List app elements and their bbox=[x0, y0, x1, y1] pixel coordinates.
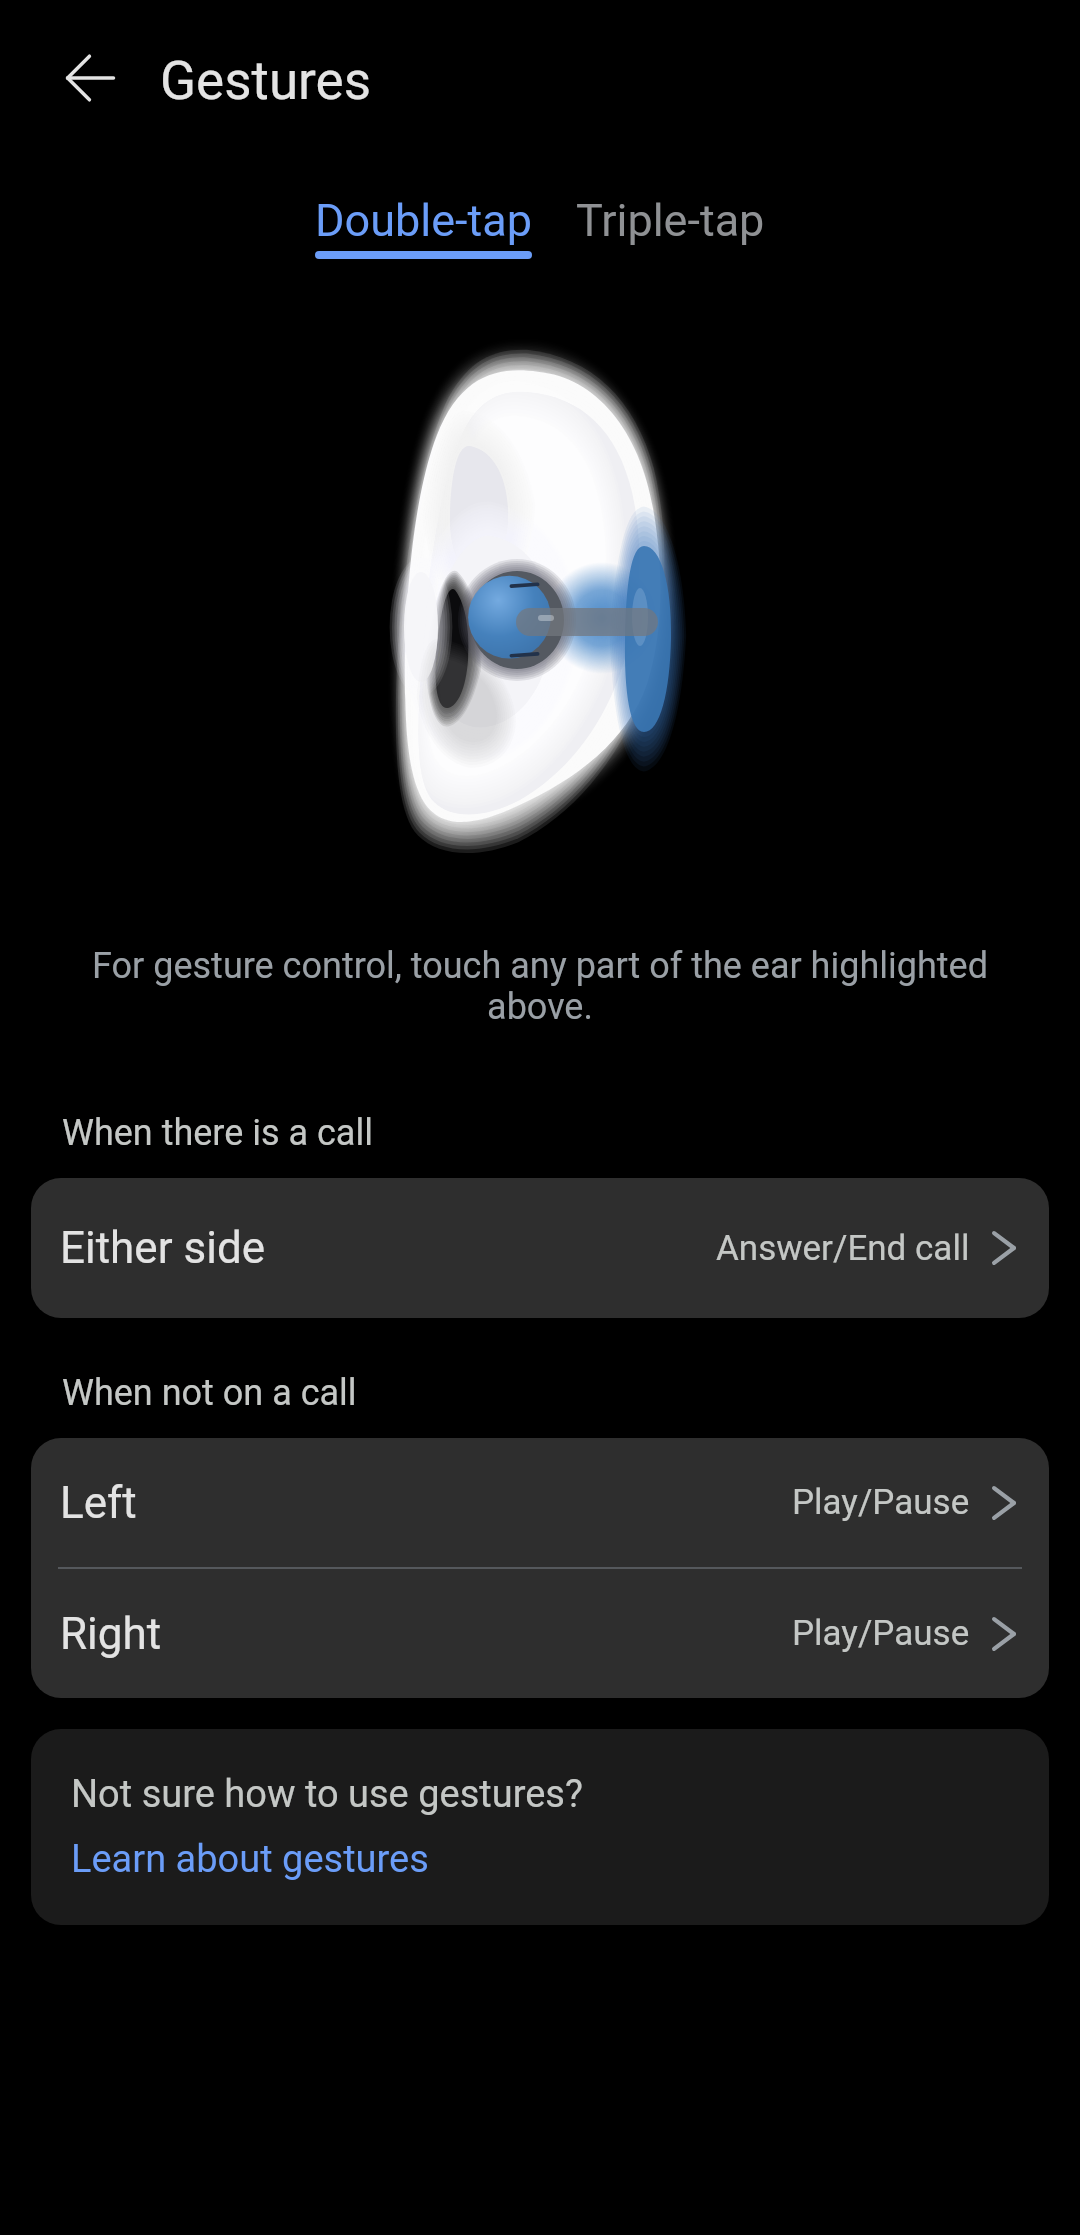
staticText: When not on a call bbox=[62, 1372, 357, 1414]
staticText: Not sure how to use gestures? bbox=[71, 1772, 583, 1817]
staticText: Right bbox=[60, 1608, 162, 1660]
staticText: Left bbox=[60, 1477, 137, 1529]
button[interactable]: Learn about gestures bbox=[71, 1837, 429, 1882]
button[interactable]: Triple-tap bbox=[576, 194, 765, 259]
staticText: For gesture control, touch any part of t… bbox=[44, 945, 1036, 1028]
staticText: Double-tap bbox=[315, 194, 532, 247]
button[interactable]: Double-tap bbox=[315, 194, 532, 259]
staticText: When there is a call bbox=[62, 1112, 373, 1154]
staticText: Triple-tap bbox=[576, 194, 765, 247]
button[interactable]: Left bbox=[31, 1438, 1049, 1567]
button[interactable]: Back bbox=[34, 22, 146, 134]
staticText: Learn about gestures bbox=[71, 1837, 429, 1882]
button[interactable]: Either side bbox=[31, 1178, 1049, 1318]
button[interactable]: Right bbox=[31, 1569, 1049, 1698]
staticText: Answer/End call bbox=[716, 1228, 970, 1269]
staticText: Either side bbox=[60, 1222, 266, 1274]
staticText: Gestures bbox=[160, 50, 372, 112]
staticText: Play/Pause bbox=[792, 1613, 970, 1654]
staticText: Play/Pause bbox=[792, 1482, 970, 1523]
